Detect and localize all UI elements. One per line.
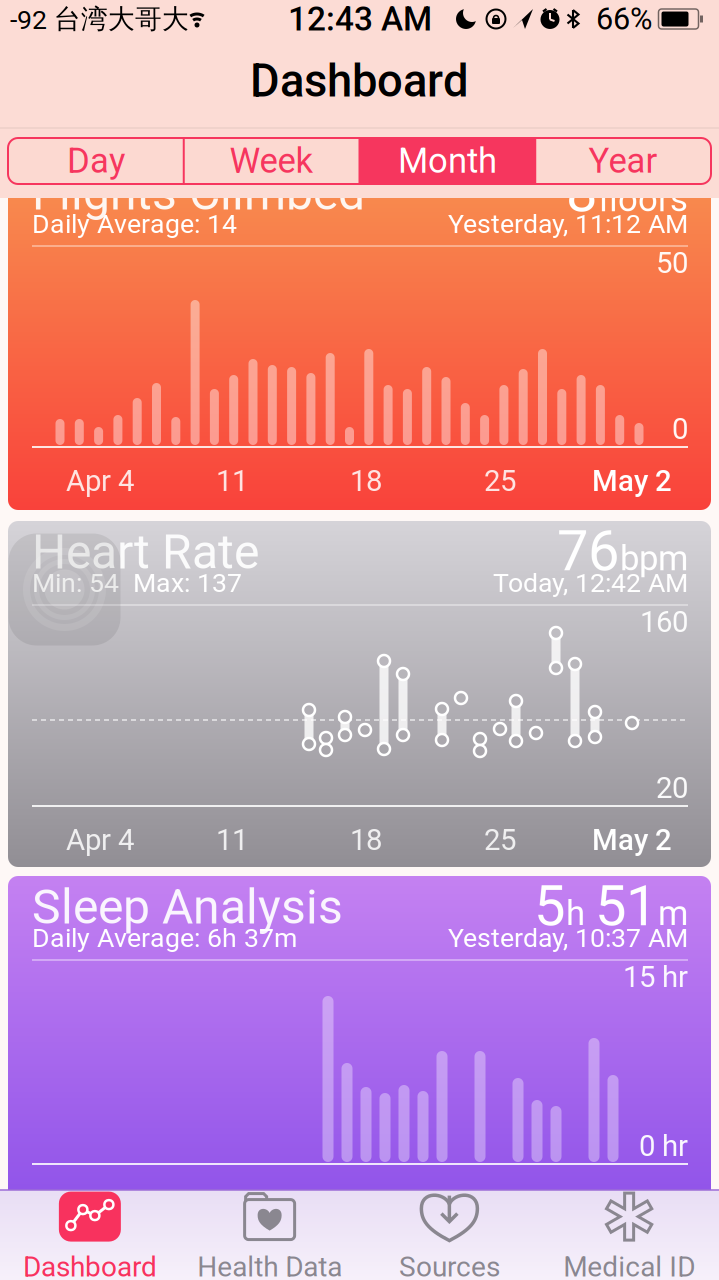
staticText: 12:43 AM (288, 0, 432, 39)
staticText: 18 (350, 464, 382, 498)
staticText: Today, 12:42 AM (493, 567, 688, 599)
staticText: Daily Average: 6h 37m (32, 922, 297, 954)
staticText: 11 (216, 464, 248, 498)
staticText: 160 (640, 605, 688, 639)
staticText: Yesterday, 10:37 AM (448, 922, 688, 954)
staticText: Min: 54 Max: 137 (32, 567, 242, 599)
staticText: Apr 4 (66, 464, 134, 498)
staticText: Month (398, 141, 497, 181)
button[interactable]: Medical ID (539, 1190, 719, 1280)
staticText: Health Data (197, 1251, 342, 1280)
staticText: Medical ID (563, 1251, 695, 1280)
button[interactable]: Month (362, 138, 532, 184)
button[interactable]: Week (187, 138, 357, 184)
staticText: 51 (595, 873, 657, 939)
staticText: 5 (534, 873, 565, 939)
button[interactable]: Health Data (180, 1190, 360, 1280)
staticText: Heart Rate (32, 524, 259, 580)
staticText: 76 (557, 518, 619, 584)
staticText: 18 (350, 823, 382, 857)
staticText: -92 台湾大哥大 (10, 2, 189, 36)
staticText: 25 (484, 823, 516, 857)
staticText: floors (598, 179, 688, 220)
button[interactable]: Year (538, 138, 708, 184)
staticText: 25 (484, 464, 516, 498)
staticText: 11 (216, 823, 248, 857)
staticText: 66% (596, 1, 652, 37)
staticText: bpm (620, 538, 688, 579)
staticText: May 2 (592, 464, 672, 498)
staticText: Day (67, 141, 125, 181)
button[interactable]: Dashboard (0, 1190, 180, 1280)
button[interactable]: Sources (359, 1190, 539, 1280)
staticText: 8 (566, 159, 597, 225)
staticText: May 2 (592, 823, 672, 857)
staticText: Year (589, 141, 658, 181)
staticText: 20 (656, 771, 688, 805)
button[interactable]: Sleep Analysis (8, 876, 711, 1224)
button[interactable]: Heart Rate (8, 521, 711, 867)
staticText: Sleep Analysis (32, 879, 343, 935)
staticText: h (566, 893, 594, 934)
staticText: 15 hr (623, 960, 688, 994)
staticText: 0 (672, 412, 688, 446)
staticText: Week (230, 141, 314, 181)
staticText: 50 (656, 246, 688, 280)
button[interactable] (8, 533, 120, 645)
staticText: Dashboard (250, 54, 469, 107)
button[interactable]: Day (11, 138, 181, 184)
staticText: m (658, 893, 688, 934)
staticText: Dashboard (23, 1251, 157, 1280)
staticText: Daily Average: 14 (32, 208, 237, 240)
staticText: Sources (399, 1251, 500, 1280)
staticText: Apr 4 (66, 823, 134, 857)
staticText: Flights Climbed (32, 165, 365, 221)
staticText: Yesterday, 11:12 AM (448, 208, 688, 240)
button[interactable]: Flights Climbed (8, 162, 711, 510)
staticText: 0 hr (639, 1129, 688, 1163)
